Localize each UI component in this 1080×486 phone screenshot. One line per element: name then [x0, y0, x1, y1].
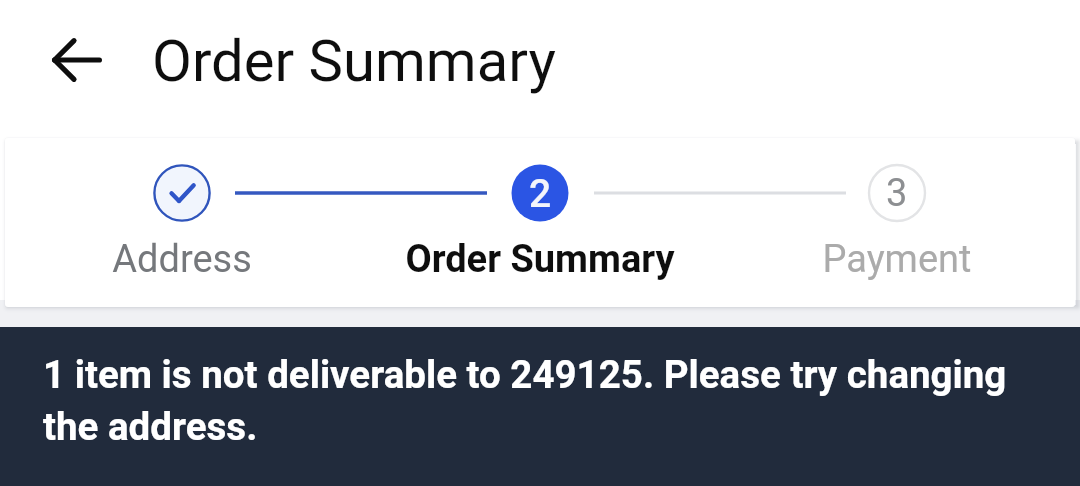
- staticText: Order Summary: [152, 27, 556, 95]
- button[interactable]: Back: [29, 12, 125, 108]
- staticText: Order Summary: [405, 237, 675, 282]
- button[interactable]: Address: [12, 152, 352, 292]
- staticText: 1 item is not deliverable to 249125. Ple…: [43, 352, 1033, 450]
- staticText: 2: [529, 171, 552, 217]
- staticText: Payment: [822, 237, 972, 282]
- staticText: 3: [886, 171, 908, 216]
- staticText: Address: [112, 237, 252, 282]
- button[interactable]: Order Summary: [370, 152, 710, 292]
- button[interactable]: Payment: [727, 152, 1067, 292]
